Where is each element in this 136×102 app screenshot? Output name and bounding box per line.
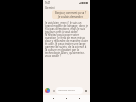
button[interactable]: Voice input xyxy=(84,89,88,93)
staticText: 9:41 xyxy=(45,1,51,5)
button[interactable]: Bonjour, comment ça va ? Je voulais dema… xyxy=(52,10,89,19)
staticText: Bonjour, comment ça va ? Je voulais dema… xyxy=(54,11,87,18)
button[interactable]: Recent apps xyxy=(77,96,82,101)
button[interactable]: Home xyxy=(64,96,69,101)
button[interactable]: Gemini xyxy=(45,6,55,10)
button[interactable]: Add xyxy=(52,89,55,92)
button[interactable]: Gemini xyxy=(45,88,50,93)
staticText: Message Gemini xyxy=(58,89,76,92)
button[interactable]: Message Gemini xyxy=(56,87,83,94)
staticText: Je vais bien, merci ! Je suis un grand m… xyxy=(45,21,89,58)
button[interactable]: Back xyxy=(51,96,56,101)
staticText: Gemini xyxy=(45,6,55,10)
